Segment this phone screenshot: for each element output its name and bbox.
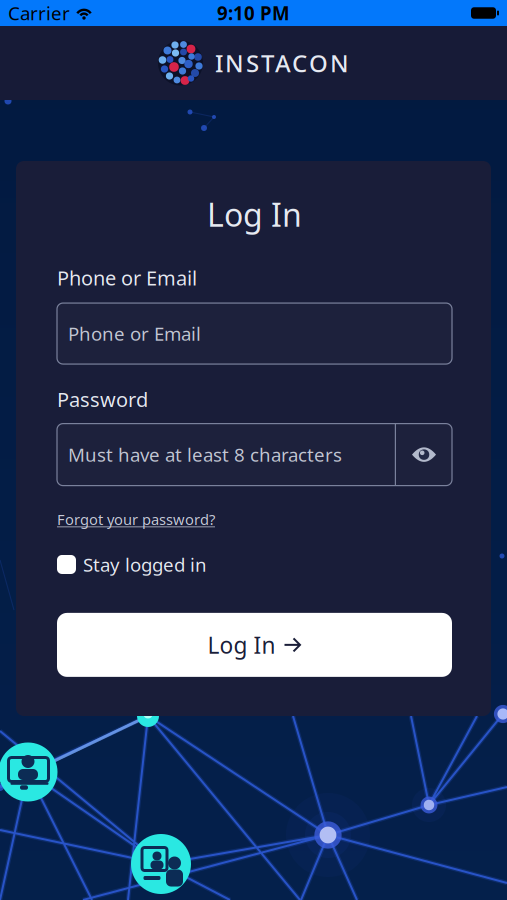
staticText: Log In bbox=[207, 193, 302, 235]
staticText: Forgot your password? bbox=[57, 510, 215, 529]
button[interactable]: Stay logged in bbox=[57, 552, 207, 577]
staticText: INSTACON bbox=[215, 47, 349, 79]
staticText: Log In bbox=[207, 630, 275, 660]
button[interactable]: Forgot your password? bbox=[57, 510, 215, 529]
staticText: Carrier bbox=[8, 1, 70, 25]
staticText: 9:10 PM bbox=[217, 1, 290, 25]
button[interactable]: Log In bbox=[57, 613, 452, 677]
staticText: Stay logged in bbox=[83, 552, 207, 577]
staticText: Phone or Email bbox=[57, 264, 197, 291]
button[interactable]: Phone or Email bbox=[57, 303, 452, 364]
button[interactable]: Must have at least 8 characters bbox=[57, 424, 452, 486]
staticText: Must have at least 8 characters bbox=[68, 442, 342, 467]
staticText: Phone or Email bbox=[68, 321, 201, 346]
staticText: Password bbox=[57, 386, 148, 413]
